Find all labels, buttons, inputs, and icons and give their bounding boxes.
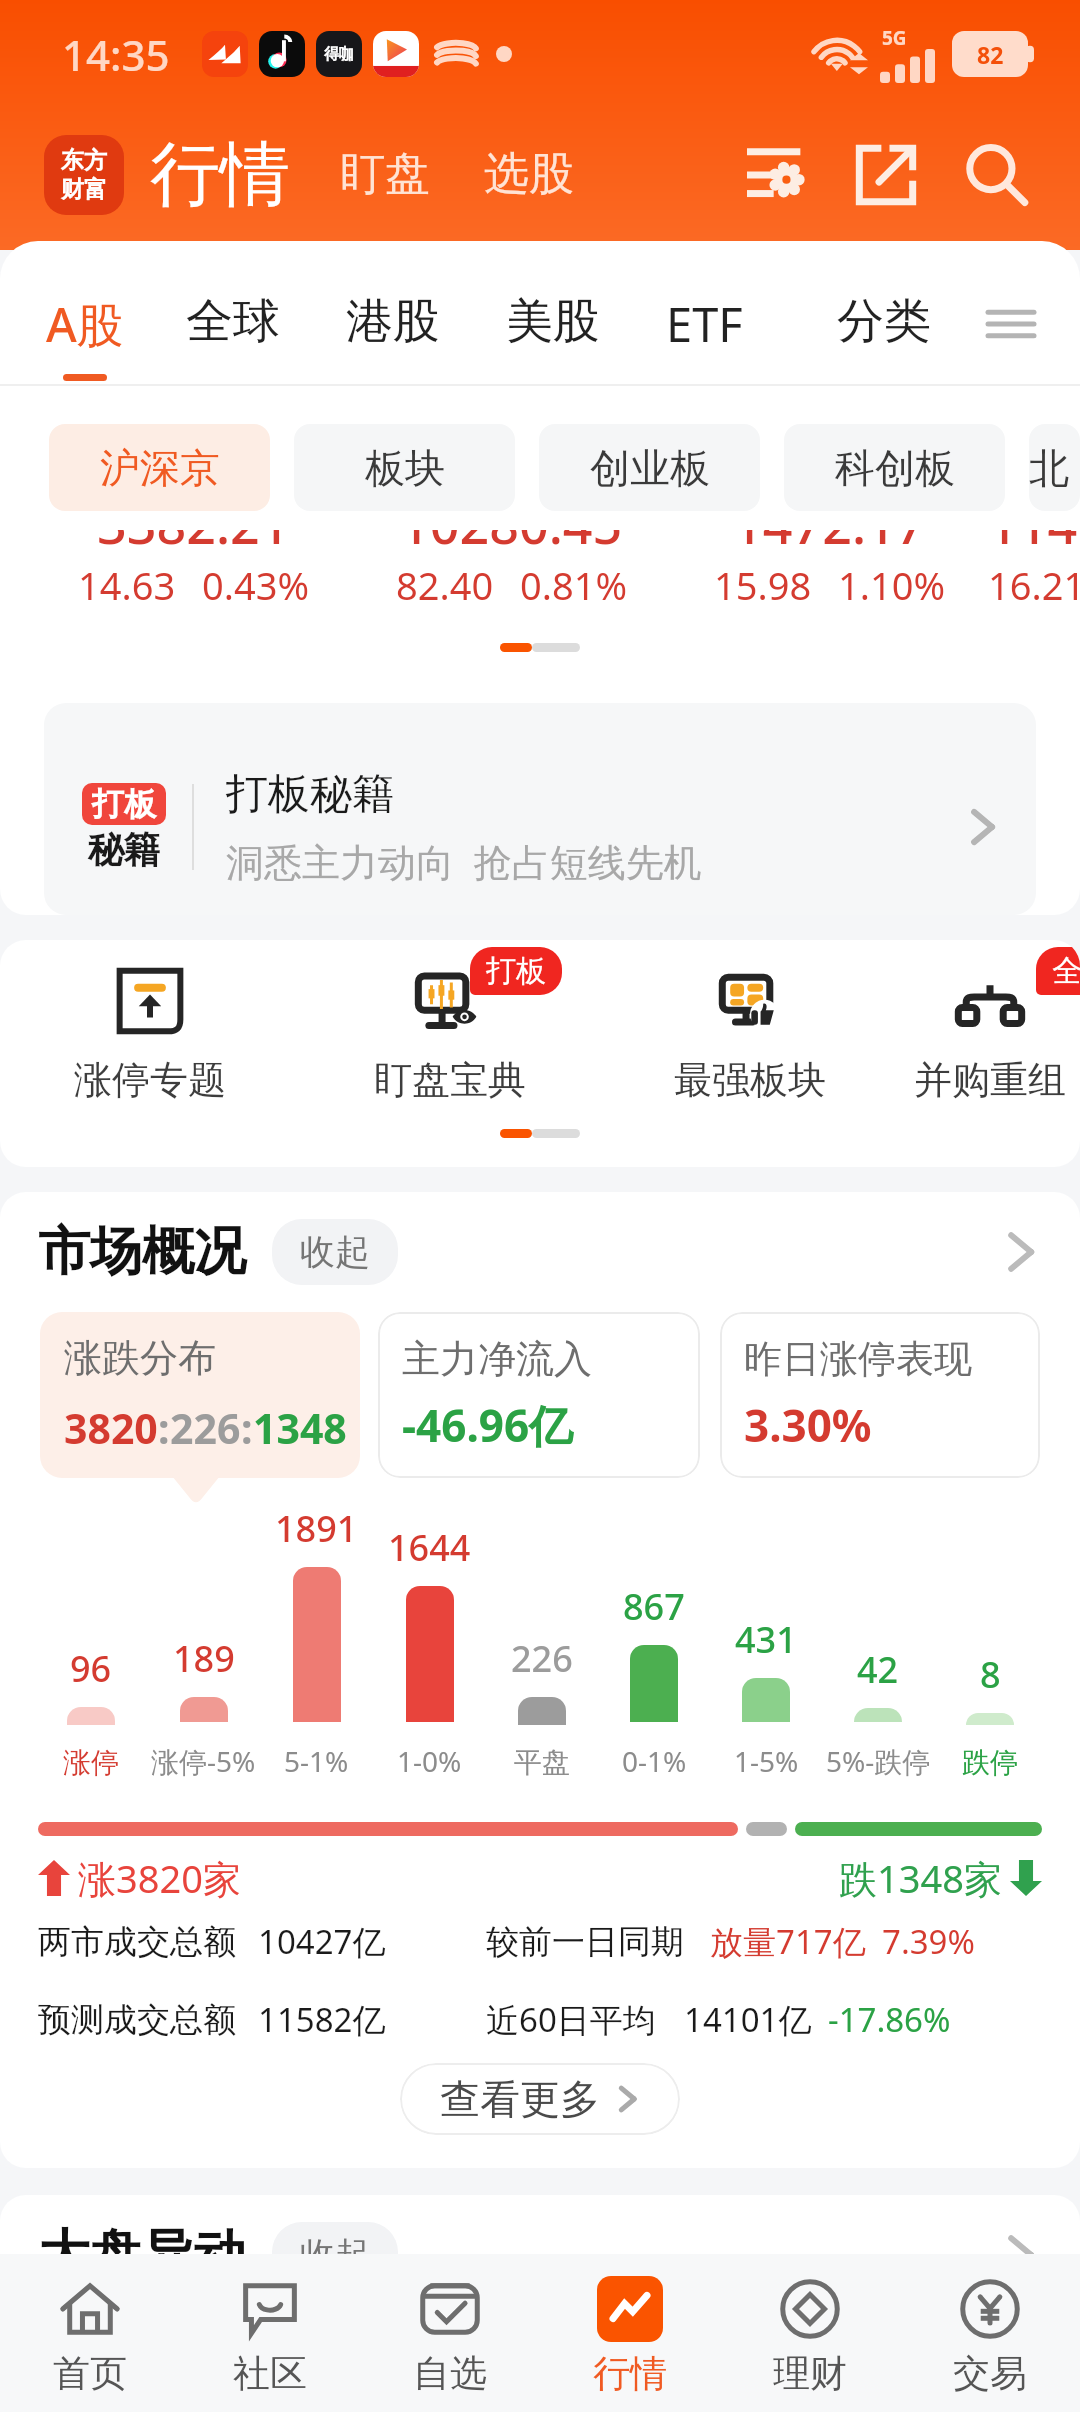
button[interactable]: 设置 [726, 125, 826, 225]
button[interactable]: 全部 [900, 968, 1080, 1104]
button[interactable]: 更多市场概况 [990, 1222, 1050, 1282]
staticText: 预测成交总额 [38, 1999, 236, 2041]
button[interactable]: 板块 [294, 424, 515, 511]
staticText: 最强板块 [674, 1056, 826, 1104]
button[interactable]: 社区 [180, 2254, 360, 2412]
staticText: 96 [70, 1644, 112, 1693]
button[interactable]: 自选 [360, 2254, 540, 2412]
button[interactable]: 主力净流入 [378, 1312, 700, 1478]
staticText: 1.10% [838, 559, 945, 606]
staticText: 14101亿 [684, 1997, 812, 2042]
staticText: 0.43% [202, 559, 309, 606]
staticText: 14:35 [62, 26, 170, 83]
staticText: 洞悉主力动向 抢占短线先机 [226, 835, 702, 887]
staticText: 1472.17 [733, 530, 926, 559]
staticText: 1-5% [734, 1742, 799, 1780]
button[interactable]: 港股 [346, 292, 440, 376]
button[interactable]: 行情 [540, 2254, 720, 2412]
button[interactable]: 涨跌分布 [40, 1312, 360, 1478]
staticText: 东方 [61, 146, 107, 175]
staticText: 3382.21 [97, 530, 290, 559]
button[interactable]: 昨日涨停表现 [720, 1312, 1040, 1478]
button[interactable]: 选股 [484, 146, 574, 203]
staticText: 北交所 [1029, 443, 1080, 493]
staticText: 跌1348家 [839, 1852, 1002, 1904]
staticText: 1644 [388, 1523, 471, 1572]
staticText: 理财 [773, 2350, 847, 2397]
staticText: 14.63 [78, 559, 176, 606]
staticText: 1891 [275, 1504, 358, 1553]
staticText: 全部 [1052, 952, 1080, 990]
button[interactable]: 交易 [900, 2254, 1080, 2412]
staticText: 82.40 [396, 559, 494, 606]
staticText: 10280.45 [400, 530, 623, 559]
staticText: 社区 [233, 2350, 307, 2397]
button[interactable]: 搜索 [946, 125, 1046, 225]
staticText: 沪深京 [100, 443, 220, 493]
staticText: 15.98 [714, 559, 812, 606]
staticText: 3820 [64, 1400, 158, 1456]
staticText: 42 [857, 1645, 899, 1694]
button[interactable]: 涨停专题 [0, 968, 300, 1104]
staticText: 收起 [300, 2233, 370, 2277]
button[interactable]: 北交所 [1029, 424, 1080, 511]
staticText: 板块 [365, 443, 445, 493]
staticText: 财富 [61, 175, 107, 204]
button[interactable]: 盯盘 [340, 146, 430, 203]
staticText: 涨停专题 [74, 1056, 226, 1104]
button[interactable]: 首页 [0, 2254, 180, 2412]
staticText: 较前一日同期 [486, 1921, 684, 1963]
staticText: 盯盘宝典 [374, 1056, 526, 1104]
staticText: 得 [324, 45, 339, 64]
staticText: 16.21 [988, 559, 1080, 606]
button[interactable]: 收起 [272, 1219, 398, 1285]
button[interactable]: 美股 [506, 292, 600, 376]
staticText: : [158, 1400, 170, 1456]
button[interactable]: 理财 [720, 2254, 900, 2412]
staticText: 昨日涨停表现 [744, 1335, 972, 1383]
staticText: 两市成交总额 [38, 1921, 236, 1963]
staticText: 涨停 [63, 1745, 119, 1780]
staticText: 431 [735, 1615, 797, 1664]
staticText: -46.96亿 [402, 1395, 574, 1455]
staticText: 并购重组 [914, 1056, 1066, 1104]
button[interactable]: 打板 [300, 968, 600, 1104]
staticText: 美股 [506, 292, 600, 351]
staticText: 主力净流入 [402, 1335, 592, 1383]
staticText: 11582亿 [258, 1997, 386, 2042]
button[interactable]: 行情 [150, 131, 290, 219]
button[interactable]: 最强板块 [600, 968, 900, 1104]
staticText: 分类 [837, 292, 931, 351]
staticText: 867 [623, 1582, 685, 1631]
button[interactable]: 创业板 [539, 424, 760, 511]
button[interactable]: 分享 [836, 125, 936, 225]
staticText: 1-0% [397, 1742, 462, 1780]
staticText: 3.30% [744, 1395, 872, 1455]
staticText: 交易 [953, 2350, 1027, 2397]
button[interactable]: 打板 [44, 703, 1036, 915]
staticText: 82 [977, 39, 1004, 70]
staticText: 港股 [346, 292, 440, 351]
staticText: 0-1% [622, 1742, 687, 1780]
staticText: 首页 [53, 2350, 127, 2397]
staticText: 5G [882, 25, 907, 51]
staticText: 7.39% [882, 1919, 975, 1964]
button[interactable]: 收起 [272, 2222, 398, 2288]
button[interactable]: 分类 [837, 292, 931, 376]
button[interactable]: 更多大盘异动 [990, 2225, 1050, 2285]
staticText: 秘籍 [88, 827, 160, 872]
staticText: 226 [170, 1400, 241, 1456]
button[interactable]: 更多分类 [968, 292, 1054, 356]
staticText: 行情 [593, 2350, 667, 2397]
button[interactable]: A股 [46, 292, 124, 381]
staticText: 189 [173, 1634, 235, 1683]
button[interactable]: 沪深京 [49, 424, 270, 511]
button[interactable]: ETF [666, 292, 743, 381]
staticText: 1145.26 [988, 530, 1080, 559]
button[interactable]: 科创板 [784, 424, 1005, 511]
button[interactable]: 全球 [186, 292, 280, 376]
button[interactable]: 查看更多 [400, 2063, 680, 2135]
staticText: 10427亿 [258, 1919, 386, 1964]
staticText: A股 [46, 292, 124, 356]
staticText: 放量717亿 [710, 1919, 866, 1964]
